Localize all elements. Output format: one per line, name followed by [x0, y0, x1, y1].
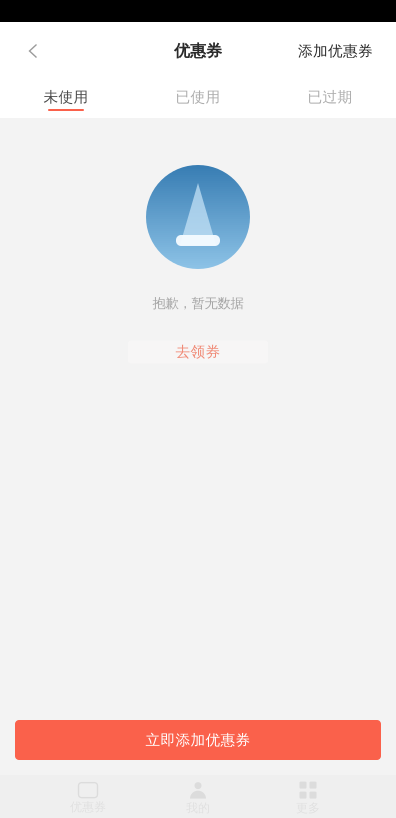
button[interactable]: 已使用	[132, 80, 264, 118]
button[interactable]: 已过期	[264, 80, 396, 118]
staticText: 去领券	[175, 343, 220, 361]
staticText: 立即添加优惠券	[145, 731, 250, 749]
staticText: 已过期	[307, 88, 352, 106]
button[interactable]: 去领券	[128, 340, 268, 363]
staticText: 优惠券	[70, 800, 106, 814]
button[interactable]: 未使用	[0, 80, 132, 118]
button[interactable]: 立即添加优惠券	[0, 720, 396, 760]
staticText: 添加优惠券	[298, 42, 373, 60]
staticText: 抱歉，暂无数据	[152, 295, 243, 311]
staticText: 更多	[296, 801, 320, 815]
staticText: 已使用	[175, 88, 220, 106]
button[interactable]: 返回	[0, 22, 44, 80]
button[interactable]: 添加优惠券	[298, 22, 396, 80]
button[interactable]: 我的	[143, 775, 253, 818]
button[interactable]: 更多	[253, 775, 363, 818]
staticText: 优惠券	[174, 41, 222, 61]
staticText: 未使用	[43, 88, 88, 106]
staticText: 我的	[186, 801, 210, 815]
